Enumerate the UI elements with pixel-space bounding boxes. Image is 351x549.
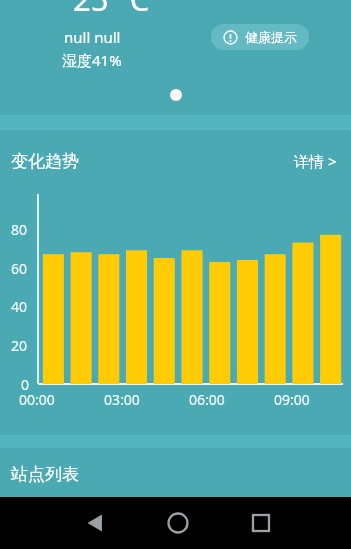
staticText: 详情 > <box>294 151 337 171</box>
button[interactable]: 站点列表 <box>0 448 351 497</box>
staticText: 80 <box>11 220 28 239</box>
button[interactable]: 健康提示 <box>211 24 309 50</box>
button[interactable]: Recents <box>243 505 279 541</box>
staticText: 40 <box>11 297 28 316</box>
staticText: 60 <box>11 259 28 278</box>
button[interactable]: Back <box>78 505 114 541</box>
staticText: 健康提示 <box>245 29 297 45</box>
button[interactable]: Home <box>160 505 196 541</box>
staticText: 25 °C <box>73 0 150 20</box>
staticText: 湿度41% <box>62 50 122 70</box>
staticText: 变化趋势 <box>11 151 79 172</box>
staticText: 0 <box>21 375 30 394</box>
staticText: null null <box>64 27 121 47</box>
button[interactable]: 详情 > <box>291 148 340 174</box>
staticText: 20 <box>11 336 28 355</box>
staticText: 09:00 <box>274 390 310 409</box>
staticText: 00:00 <box>19 390 55 409</box>
staticText: 03:00 <box>104 390 140 409</box>
staticText: 站点列表 <box>11 464 79 485</box>
staticText: 06:00 <box>189 390 225 409</box>
